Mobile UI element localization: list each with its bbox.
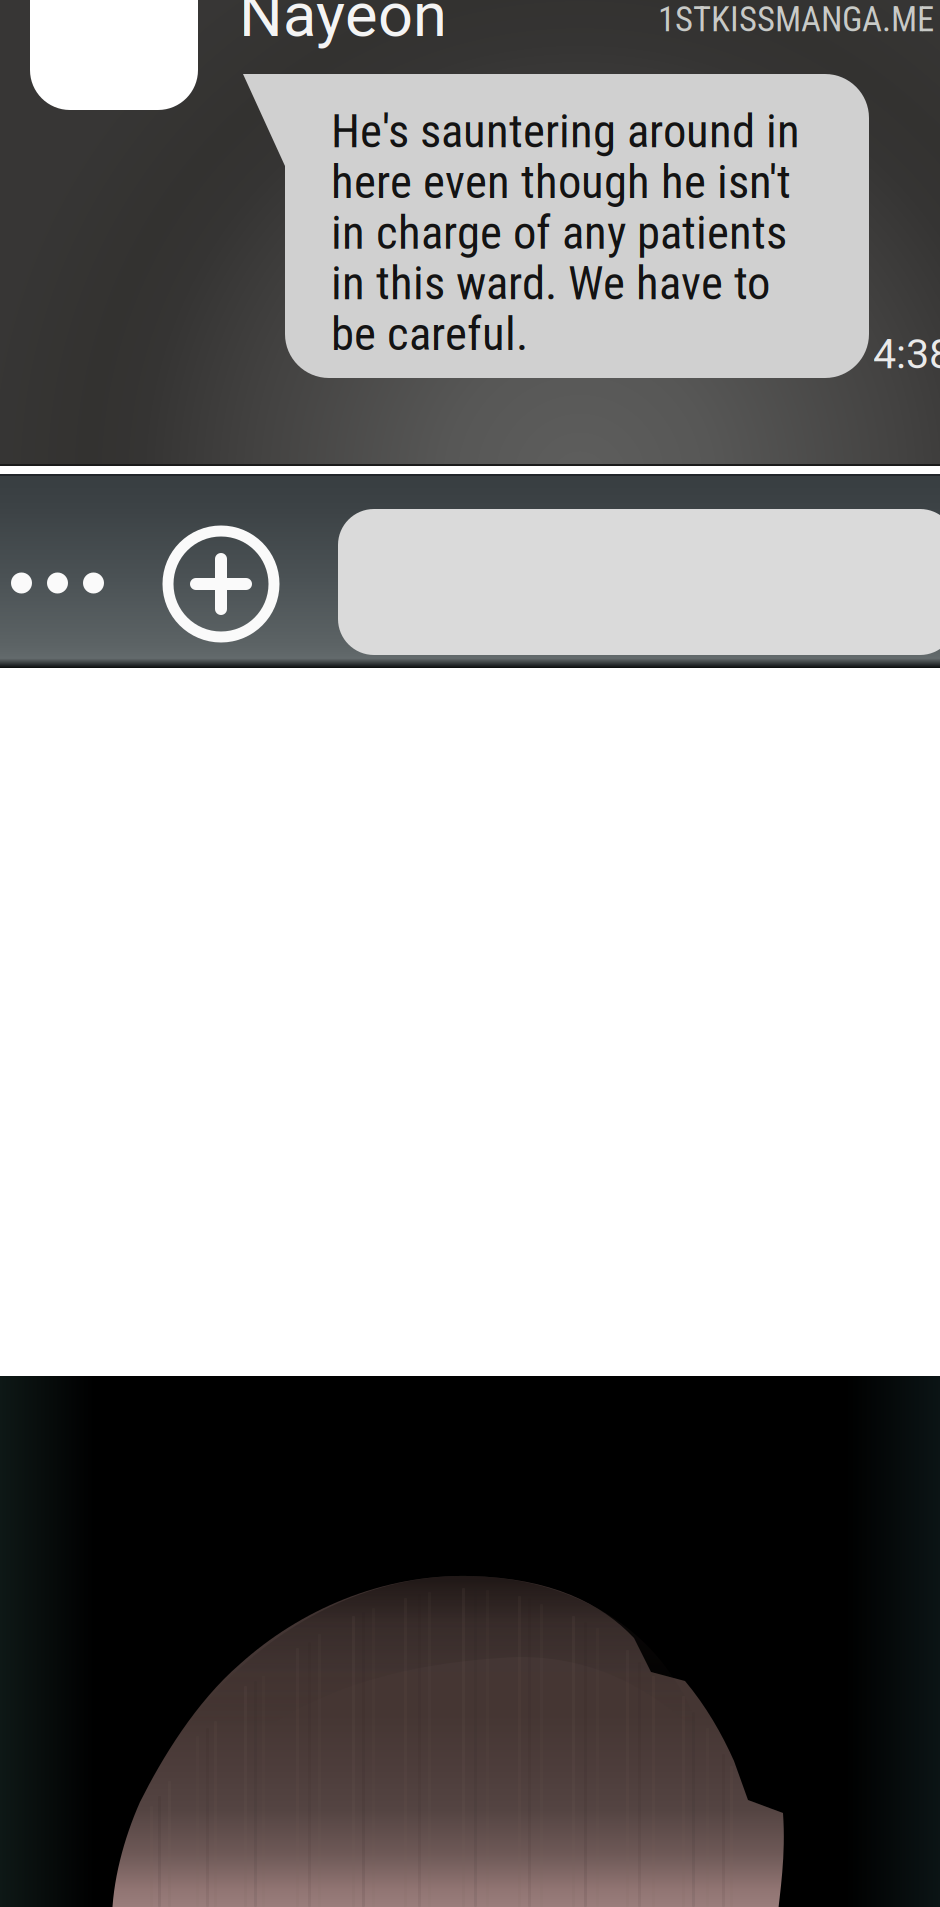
staticText: in this ward. We have to <box>331 256 770 311</box>
staticText: 4:38 <box>873 330 940 378</box>
staticText: in charge of any patients <box>331 205 787 260</box>
staticText: here even though he isn't <box>331 155 791 209</box>
button[interactable]: Add attachment <box>162 525 280 643</box>
staticText: Nayeon <box>239 0 447 51</box>
button[interactable]: Message <box>338 509 940 655</box>
button[interactable]: More options <box>11 539 140 627</box>
staticText: 1STKISSMANGA.ME <box>658 0 934 40</box>
staticText: be careful. <box>331 307 528 361</box>
staticText: He's sauntering around in <box>331 104 800 159</box>
